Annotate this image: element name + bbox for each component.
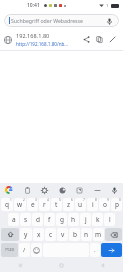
button[interactable]: Emoji xyxy=(31,243,42,257)
button[interactable]: Suchbegriff oder Webadresse eingeben xyxy=(4,14,119,27)
button[interactable]: Backspace xyxy=(105,228,122,241)
button[interactable]: x xyxy=(33,228,44,241)
button[interactable]: l xyxy=(104,213,115,226)
staticText: / xyxy=(23,246,26,254)
staticText: 3 xyxy=(35,198,37,202)
button[interactable]: z xyxy=(63,198,74,211)
staticText: z xyxy=(67,200,71,209)
button[interactable]: o xyxy=(99,198,110,211)
staticText: 6 xyxy=(71,198,73,202)
button[interactable]: Translate xyxy=(73,184,85,196)
staticText: v xyxy=(61,230,65,239)
staticText: 1 xyxy=(10,198,12,202)
staticText: f xyxy=(48,215,51,224)
button[interactable]: a xyxy=(8,213,19,226)
button[interactable]: . xyxy=(90,243,100,257)
button[interactable]: More xyxy=(91,184,103,196)
button[interactable]: Share xyxy=(80,33,93,46)
button[interactable]: Voice input xyxy=(108,184,120,196)
staticText: b xyxy=(73,230,77,239)
button[interactable]: t xyxy=(51,198,62,211)
staticText: l xyxy=(109,215,111,224)
button[interactable]: Google xyxy=(3,184,15,196)
staticText: e xyxy=(31,200,35,209)
button[interactable]: m xyxy=(93,228,104,241)
button[interactable]: Voice search xyxy=(104,16,114,26)
button[interactable]: Settings xyxy=(38,184,50,196)
button[interactable]: c xyxy=(45,228,56,241)
staticText: 7 xyxy=(83,198,85,202)
staticText: 192.168.1.80 xyxy=(16,32,50,40)
button[interactable]: w xyxy=(14,198,26,211)
staticText: http://192.168.1.80/nb... xyxy=(16,41,69,47)
button[interactable]: ?123 xyxy=(1,243,18,257)
staticText: 8 xyxy=(95,198,97,202)
button[interactable]: Copy xyxy=(93,33,106,46)
staticText: m xyxy=(95,230,102,239)
staticText: t xyxy=(55,200,58,209)
button[interactable]: / xyxy=(19,243,30,257)
button[interactable]: 192.168.1.80 xyxy=(0,29,123,50)
staticText: p xyxy=(115,200,119,209)
staticText: a xyxy=(12,215,16,224)
button[interactable]: p xyxy=(111,198,122,211)
button[interactable]: d xyxy=(32,213,43,226)
staticText: 1 xyxy=(106,3,109,8)
button[interactable]: n xyxy=(81,228,92,241)
staticText: Suchbegriff oder Webadresse eingeben xyxy=(11,17,104,24)
button[interactable]: r xyxy=(39,198,50,211)
staticText: n xyxy=(84,230,89,239)
staticText: g xyxy=(60,215,64,224)
button[interactable]: Go xyxy=(101,243,122,257)
button[interactable]: q xyxy=(1,198,13,211)
button[interactable]: Edit xyxy=(106,33,119,46)
button[interactable]: Clipboard xyxy=(21,184,33,196)
staticText: c xyxy=(49,230,53,239)
button[interactable]: e xyxy=(27,198,38,211)
staticText: s xyxy=(24,215,28,224)
staticText: k xyxy=(96,215,100,224)
button[interactable]: h xyxy=(68,213,79,226)
button[interactable]: f xyxy=(44,213,55,226)
button[interactable]: v xyxy=(57,228,68,241)
button[interactable]: u xyxy=(75,198,86,211)
button[interactable]: Stickers xyxy=(56,184,68,196)
staticText: y xyxy=(24,230,28,239)
staticText: 4 xyxy=(47,198,49,202)
button[interactable]: b xyxy=(69,228,80,241)
staticText: 9 xyxy=(107,198,109,202)
button[interactable]: s xyxy=(20,213,31,226)
staticText: 2 xyxy=(23,198,25,202)
button[interactable]: Shift xyxy=(1,228,19,241)
staticText: j xyxy=(85,215,87,224)
staticText: x xyxy=(37,230,41,239)
staticText: r xyxy=(43,200,46,209)
button[interactable]: k xyxy=(92,213,103,226)
button[interactable]: g xyxy=(56,213,67,226)
staticText: ?123 xyxy=(5,247,15,253)
staticText: w xyxy=(17,200,23,209)
staticText: 10:41 xyxy=(27,2,40,9)
staticText: 5 xyxy=(59,198,61,202)
staticText: d xyxy=(36,215,40,224)
staticText: . xyxy=(94,246,96,254)
staticText: 0 xyxy=(119,198,121,202)
button[interactable]: i xyxy=(87,198,98,211)
staticText: q xyxy=(5,200,9,209)
staticText: h xyxy=(71,215,76,224)
staticText: i xyxy=(92,200,94,209)
button[interactable]: y xyxy=(20,228,32,241)
staticText: o xyxy=(103,200,107,209)
staticText: u xyxy=(78,200,83,209)
button[interactable]: j xyxy=(80,213,91,226)
